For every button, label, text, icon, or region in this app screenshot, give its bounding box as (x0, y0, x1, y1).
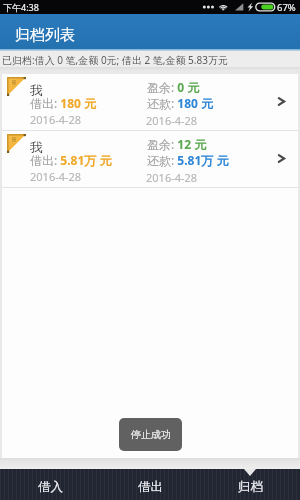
staticText: 2016-4-28 (30, 112, 82, 127)
staticText: 归档列表 (15, 26, 75, 45)
staticText: 盈余: 12 元 (147, 136, 207, 152)
staticText: 我 (30, 82, 43, 98)
staticText: 已归档:借入 0 笔,金额 0元; 借出 2 笔,金额 5.83万元 (2, 53, 228, 67)
button[interactable]: 查看详情 (264, 131, 298, 187)
staticText: 下午4:38 (3, 1, 39, 13)
staticText: 我 (30, 139, 43, 155)
staticText: 借出 (138, 479, 163, 495)
button[interactable]: 归档 (200, 469, 300, 500)
button[interactable]: 查看详情 (264, 74, 298, 130)
button[interactable]: 我 (2, 131, 298, 187)
staticText: 还款: 5.81万 元 (147, 152, 229, 168)
staticText: 盈余: 0 元 (147, 79, 200, 95)
button[interactable]: 借出 (100, 469, 200, 500)
staticText: 借出: 5.81万 元 (30, 152, 112, 168)
button[interactable]: 借入 (0, 469, 100, 500)
staticText: 借出: 180 元 (30, 95, 97, 111)
staticText: 归档 (238, 479, 263, 495)
staticText: 2016-4-28 (30, 169, 82, 184)
staticText: 还款: 180 元 (147, 95, 214, 111)
staticText: 2016-4-28 (146, 170, 198, 185)
staticText: 67% (277, 1, 296, 14)
staticText: 停止成功 (131, 428, 171, 441)
staticText: 借入 (38, 479, 63, 495)
staticText: 2016-4-28 (146, 113, 198, 128)
button[interactable]: 我 (2, 74, 298, 130)
